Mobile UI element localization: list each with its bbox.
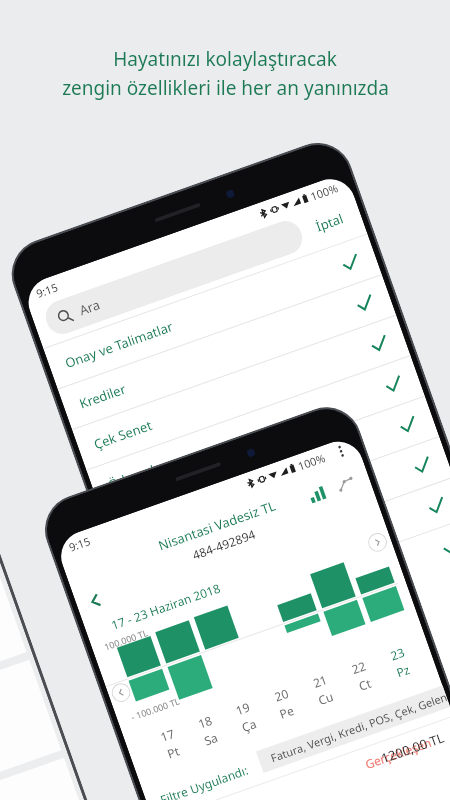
staticText: 9:15 bbox=[67, 533, 92, 555]
button[interactable]: Line chart bbox=[334, 473, 358, 496]
staticText: Fatura, Vergi, Kredi, POS, Çek, Gelen bbox=[268, 689, 449, 765]
staticText: 484-492894 bbox=[190, 526, 258, 563]
staticText: 19 bbox=[233, 698, 252, 718]
button[interactable]: Demir bbox=[171, 728, 447, 800]
staticText: 21 bbox=[311, 671, 329, 691]
staticText: - 100.000 TL bbox=[129, 694, 181, 723]
button[interactable]: Başvurular bbox=[159, 523, 450, 667]
staticText: 9:15 bbox=[34, 279, 60, 301]
button[interactable]: Yatırım bbox=[130, 442, 438, 586]
button[interactable]: Çek Senet bbox=[87, 321, 395, 464]
button[interactable]: Previous week bbox=[109, 680, 133, 705]
button[interactable]: Para Transferi bbox=[116, 402, 424, 545]
button[interactable]: Kartlar bbox=[145, 483, 450, 627]
staticText: Sa bbox=[202, 729, 220, 749]
staticText: Çek Senet bbox=[91, 416, 155, 453]
staticText: Filtre Uygulandı: bbox=[158, 762, 250, 800]
staticText: Cu bbox=[316, 688, 336, 708]
staticText: Yatırım bbox=[134, 543, 181, 575]
button[interactable]: Onay ve Talimatlar bbox=[58, 240, 367, 383]
staticText: 23 bbox=[388, 644, 407, 663]
staticText: Para Transferi bbox=[120, 489, 206, 534]
button[interactable]: Krediler bbox=[73, 280, 381, 424]
staticText: 1200,00 TL bbox=[379, 728, 447, 767]
staticText: Hayatınızı kolaylaştıracak bbox=[113, 46, 337, 72]
staticText: Onay ve Talimatlar bbox=[62, 317, 176, 372]
staticText: 100.000 TL bbox=[102, 626, 150, 653]
staticText: 17 - 23 Haziran 2018 bbox=[109, 579, 223, 633]
staticText: 22 bbox=[349, 657, 368, 677]
staticText: Ça bbox=[239, 715, 259, 735]
staticText: İptal bbox=[313, 209, 346, 235]
staticText: Ara bbox=[77, 295, 102, 319]
staticText: 20 bbox=[272, 685, 291, 705]
staticText: 100% bbox=[296, 450, 328, 473]
staticText: Kartlar bbox=[149, 584, 194, 615]
staticText: 17 bbox=[158, 725, 177, 745]
staticText: Pz bbox=[394, 661, 412, 680]
staticText: 100% bbox=[308, 180, 341, 204]
button[interactable]: Ara bbox=[41, 216, 307, 339]
button[interactable]: Bar chart bbox=[305, 483, 329, 506]
staticText: 18 bbox=[196, 712, 214, 732]
staticText: Pt bbox=[165, 742, 182, 762]
staticText: Krediler bbox=[77, 380, 128, 413]
button[interactable]: Back bbox=[79, 584, 112, 617]
staticText: zengin özellikleri ile her an yanınızda bbox=[62, 75, 389, 101]
button[interactable]: More options bbox=[330, 441, 351, 461]
staticText: Nisantasi Vadesiz TL bbox=[156, 496, 279, 555]
button[interactable]: Ödemeler bbox=[102, 361, 410, 505]
staticText: Ödemeler bbox=[106, 456, 170, 494]
staticText: Başvurular bbox=[163, 616, 232, 656]
button[interactable]: İptal bbox=[308, 204, 351, 241]
staticText: Gerçekleşen bbox=[363, 734, 433, 772]
staticText: Pe bbox=[277, 702, 297, 722]
button[interactable]: Next week bbox=[365, 530, 390, 554]
staticText: Ct bbox=[356, 675, 373, 694]
